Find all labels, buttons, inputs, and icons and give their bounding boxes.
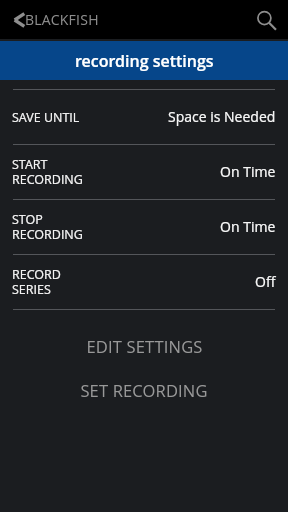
staticText: On Time xyxy=(220,217,276,236)
button[interactable]: SAVE UNTIL xyxy=(0,90,288,144)
staticText: recording settings xyxy=(75,50,214,72)
button[interactable]: EDIT SETTINGS xyxy=(0,332,288,360)
button[interactable]: START RECORDING xyxy=(0,145,288,199)
button[interactable]: RECORD SERIES xyxy=(0,255,288,309)
staticText: RECORD SERIES xyxy=(12,266,61,298)
button[interactable]: STOP RECORDING xyxy=(0,200,288,254)
staticText: Space is Needed xyxy=(168,107,276,126)
staticText: START RECORDING xyxy=(12,156,83,188)
staticText: BLACKFISH xyxy=(25,10,99,29)
staticText: SET RECORDING xyxy=(80,379,208,401)
staticText: On Time xyxy=(220,162,276,181)
button[interactable]: Search xyxy=(254,9,280,35)
staticText: Off xyxy=(255,272,276,291)
staticText: SAVE UNTIL xyxy=(12,109,80,126)
button[interactable]: SET RECORDING xyxy=(0,376,288,404)
staticText: STOP RECORDING xyxy=(12,211,83,243)
button[interactable]: BLACKFISH xyxy=(0,5,109,34)
staticText: EDIT SETTINGS xyxy=(86,335,203,357)
